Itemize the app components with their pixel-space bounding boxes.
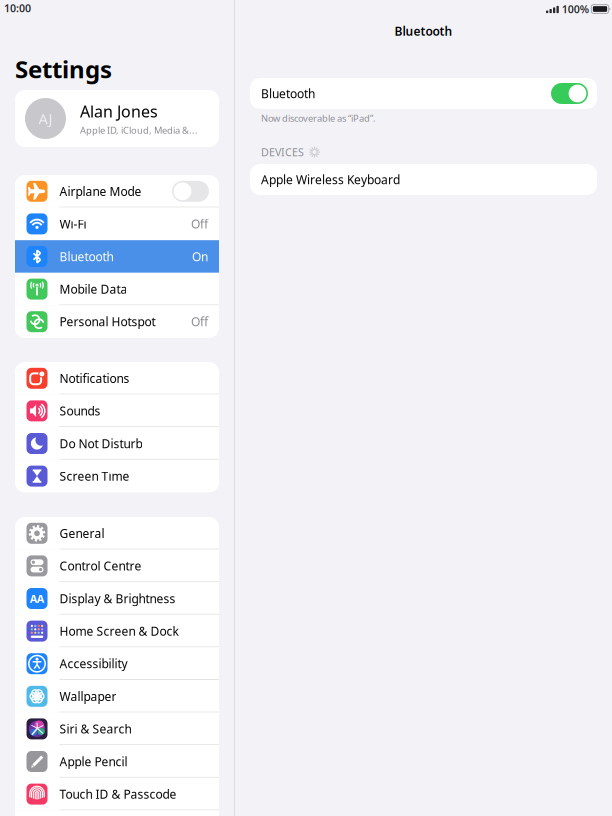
staticText: Apple Wireless Keyboard <box>261 171 400 187</box>
button[interactable]: AJ <box>15 90 219 147</box>
button[interactable]: Bluetooth <box>250 78 597 109</box>
staticText: Bluetooth <box>59 248 113 264</box>
button[interactable]: Bluetooth <box>15 240 219 273</box>
button[interactable]: Screen Time <box>15 460 219 492</box>
staticText: Now discoverable as “iPad”. <box>261 112 376 124</box>
staticText: Settings <box>15 53 112 85</box>
staticText: General <box>59 525 104 541</box>
staticText: 100% <box>562 2 589 16</box>
button[interactable]: Notifications <box>15 362 219 395</box>
button[interactable]: Accessibility <box>15 647 219 680</box>
button[interactable]: General <box>15 517 219 550</box>
staticText: Display & Brightness <box>59 590 175 606</box>
button[interactable]: Personal Hotspot <box>15 305 219 338</box>
button[interactable]: Wi-Fi <box>15 208 219 240</box>
staticText: Bluetooth <box>394 23 452 39</box>
button[interactable]: Apple Wireless Keyboard <box>250 164 597 195</box>
staticText: 10:00 <box>4 1 31 15</box>
button[interactable]: Airplane Mode <box>15 175 219 208</box>
button[interactable]: Siri & Search <box>15 713 219 745</box>
staticText: On <box>192 248 208 264</box>
staticText: Off <box>191 216 208 232</box>
staticText: Siri & Search <box>59 721 131 737</box>
staticText: Accessibility <box>59 656 127 672</box>
button[interactable]: Do Not Disturb <box>15 427 219 460</box>
staticText: DEVICES <box>261 145 304 159</box>
staticText: AJ <box>38 109 52 128</box>
staticText: Touch ID & Passcode <box>59 786 176 802</box>
staticText: Wi-Fi <box>59 216 86 232</box>
staticText: Control Centre <box>59 558 141 574</box>
staticText: Apple Pencil <box>59 753 127 769</box>
button[interactable]: Home Screen & Dock <box>15 615 219 647</box>
button[interactable]: Control Centre <box>15 550 219 582</box>
staticText: Mobile Data <box>59 281 127 297</box>
staticText: Bluetooth <box>261 85 315 101</box>
staticText: Home Screen & Dock <box>59 623 178 639</box>
staticText: Off <box>191 314 208 330</box>
staticText: Airplane Mode <box>59 183 141 199</box>
staticText: Screen Time <box>59 468 129 484</box>
staticText: Sounds <box>59 403 100 419</box>
button[interactable]: Mobile Data <box>15 273 219 305</box>
staticText: Personal Hotspot <box>59 314 155 330</box>
button[interactable]: Sounds <box>15 395 219 427</box>
staticText: Alan Jones <box>80 101 158 122</box>
staticText: Wallpaper <box>59 688 116 704</box>
staticText: Apple ID, iCloud, Media &... <box>80 124 198 136</box>
staticText: AA <box>30 591 44 606</box>
button[interactable]: Apple Pencil <box>15 745 219 778</box>
button[interactable]: Touch ID & Passcode <box>15 778 219 810</box>
staticText: Do Not Disturb <box>59 435 142 451</box>
button[interactable]: AA <box>15 582 219 615</box>
staticText: Notifications <box>59 370 129 386</box>
button[interactable]: Wallpaper <box>15 680 219 713</box>
